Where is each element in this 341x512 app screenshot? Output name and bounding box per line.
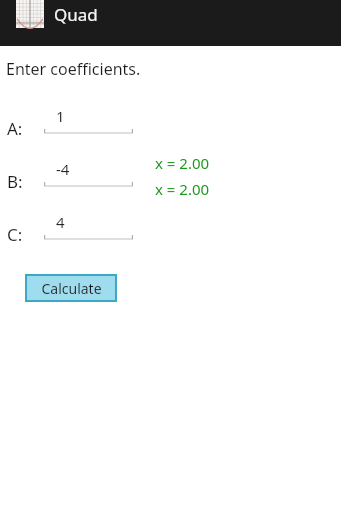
- staticText: Enter coefficients.: [6, 58, 141, 80]
- button[interactable]: 1: [44, 103, 133, 135]
- staticText: x = 2.00: [155, 179, 210, 199]
- other: Quad app icon: [16, 0, 44, 28]
- staticText: x = 2.00: [155, 153, 210, 173]
- button[interactable]: 4: [44, 209, 133, 241]
- staticText: A:: [7, 117, 23, 140]
- staticText: Calculate: [41, 279, 102, 298]
- staticText: 1: [56, 106, 65, 126]
- staticText: Quad: [54, 3, 98, 26]
- button[interactable]: Calculate: [25, 274, 117, 302]
- staticText: C:: [7, 223, 23, 246]
- staticText: 4: [56, 212, 65, 232]
- staticText: B:: [7, 170, 23, 193]
- button[interactable]: -4: [44, 156, 133, 188]
- staticText: -4: [56, 159, 70, 179]
